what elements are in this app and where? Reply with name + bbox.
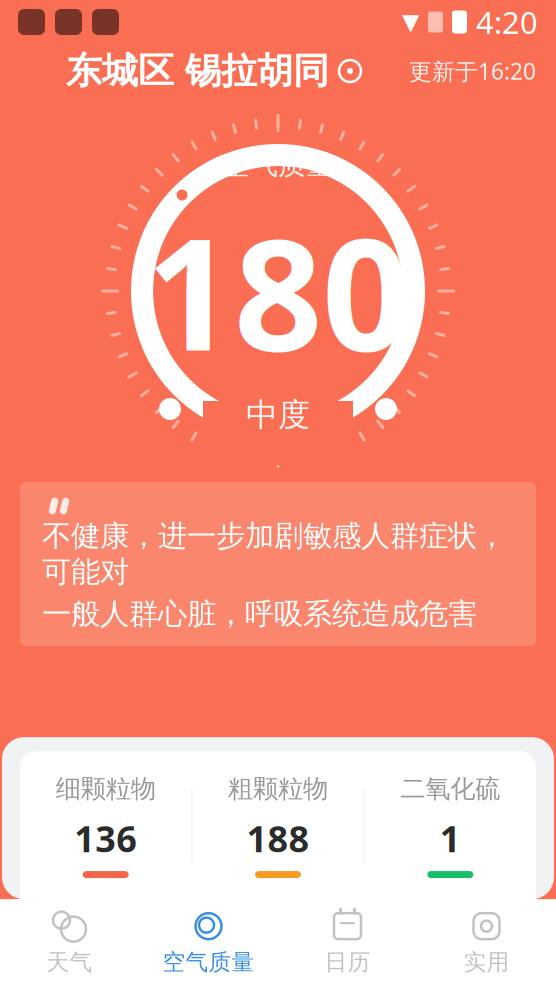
button[interactable]: 实用 [417, 903, 556, 982]
staticText: ▼ [402, 9, 419, 35]
staticText: 不健康，进一步加剧敏感人群症状，可能对 [42, 518, 506, 590]
staticText: 东城区 锡拉胡同 [66, 49, 329, 93]
staticText: 中度 [246, 395, 310, 434]
staticText: 二氧化氮 [56, 900, 156, 931]
button[interactable]: 空气质量 [139, 903, 278, 982]
staticText: 空气质量 [222, 147, 334, 182]
staticText: 天气 [46, 948, 92, 976]
staticText: 细颗粒物 [56, 773, 156, 804]
button[interactable]: 日历 [278, 903, 417, 982]
staticText: 实用 [463, 948, 509, 976]
staticText: 空气质量 [162, 948, 254, 976]
staticText: 臭氧 [425, 900, 475, 931]
staticText: 1 [440, 814, 461, 862]
staticText: 30 [85, 941, 127, 989]
staticText: 136 [74, 814, 137, 862]
staticText: 更新于16:20 [409, 56, 536, 86]
staticText: 4:20 [476, 2, 538, 42]
button[interactable]: 天气 [0, 903, 139, 982]
staticText: 188 [246, 814, 309, 862]
staticText: 粗颗粒物 [228, 773, 328, 804]
staticText: 180 [146, 188, 410, 393]
staticText: 29 [429, 941, 471, 989]
staticText: 二氧化硫 [400, 773, 500, 804]
staticText: 一般人群心脏，呼吸系统造成危害 [42, 596, 477, 632]
staticText: 日历 [324, 948, 370, 976]
